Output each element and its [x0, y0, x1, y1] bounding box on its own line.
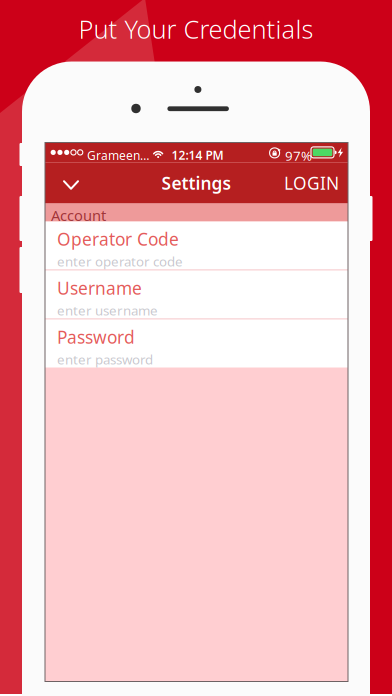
- button[interactable]: Close: [45, 160, 97, 205]
- staticText: Grameen…: [87, 147, 149, 163]
- staticText: Password: [57, 325, 135, 348]
- staticText: Username: [57, 276, 142, 299]
- staticText: enter operator code: [57, 252, 183, 270]
- staticText: Settings: [161, 171, 231, 194]
- staticText: 97%: [285, 147, 312, 164]
- button[interactable]: Operator Code: [45, 221, 348, 269]
- button[interactable]: LOGIN: [275, 162, 348, 203]
- staticText: enter password: [57, 350, 153, 368]
- staticText: enter username: [57, 301, 158, 319]
- staticText: 12:14 PM: [171, 147, 223, 163]
- staticText: Operator Code: [57, 227, 179, 250]
- button[interactable]: Password: [45, 319, 348, 367]
- staticText: Put Your Credentials: [78, 12, 313, 46]
- staticText: LOGIN: [284, 171, 339, 194]
- staticText: Account: [51, 205, 106, 225]
- button[interactable]: Username: [45, 270, 348, 318]
